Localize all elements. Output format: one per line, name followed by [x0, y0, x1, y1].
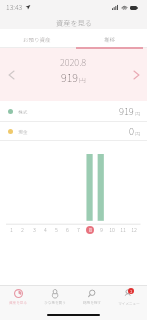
- button[interactable]: 1: [6, 225, 16, 235]
- button[interactable]: 銘柄を探す: [73, 286, 110, 307]
- staticText: 919: [119, 104, 134, 118]
- staticText: 6: [66, 226, 69, 234]
- button[interactable]: 8: [85, 225, 95, 235]
- staticText: お預り資産: [23, 36, 51, 44]
- button[interactable]: 次の月: [125, 48, 147, 101]
- staticText: 0: [129, 124, 134, 138]
- staticText: 円: [79, 75, 86, 85]
- button[interactable]: お預り資産: [0, 29, 73, 48]
- button[interactable]: 株式: [0, 101, 147, 121]
- button[interactable]: 推移: [73, 29, 147, 48]
- staticText: 5: [55, 226, 58, 234]
- staticText: 現金: [18, 128, 28, 135]
- button[interactable]: 11: [118, 225, 128, 235]
- button[interactable]: 9: [96, 225, 106, 235]
- staticText: ひな株を買う: [44, 300, 66, 305]
- button[interactable]: 資産を見る: [0, 286, 36, 307]
- staticText: 2: [21, 226, 24, 234]
- button[interactable]: 10: [107, 225, 117, 235]
- staticText: 資産を見る: [56, 18, 92, 28]
- staticText: 4: [44, 226, 47, 234]
- button[interactable]: 現金: [0, 122, 147, 140]
- staticText: 3: [33, 226, 36, 234]
- button[interactable]: 12: [129, 225, 139, 235]
- staticText: 株式: [18, 108, 28, 115]
- staticText: 11: [120, 226, 126, 234]
- staticText: 12: [131, 226, 137, 234]
- staticText: マイメニュー: [118, 301, 140, 306]
- staticText: 13:43: [6, 2, 23, 12]
- staticText: 2020.8: [60, 55, 87, 68]
- staticText: 円: [135, 130, 141, 138]
- staticText: 銘柄を探す: [83, 300, 101, 305]
- button[interactable]: 5: [51, 225, 61, 235]
- staticText: 1: [10, 226, 13, 234]
- button[interactable]: 前の月: [0, 48, 22, 101]
- button[interactable]: 1: [110, 286, 147, 307]
- staticText: 円: [135, 110, 141, 118]
- staticText: 資産を見る: [9, 300, 27, 305]
- button[interactable]: 7: [73, 225, 83, 235]
- staticText: 推移: [104, 36, 116, 44]
- staticText: 8: [89, 226, 92, 234]
- button[interactable]: 4: [40, 225, 50, 235]
- staticText: 9: [100, 226, 103, 234]
- staticText: 10: [109, 226, 115, 234]
- staticText: 7: [77, 226, 80, 234]
- button[interactable]: 3: [29, 225, 39, 235]
- button[interactable]: 6: [62, 225, 72, 235]
- staticText: 1: [130, 288, 133, 294]
- button[interactable]: 2: [17, 225, 27, 235]
- button[interactable]: ひな株を買う: [36, 286, 73, 307]
- staticText: 919: [61, 69, 78, 85]
